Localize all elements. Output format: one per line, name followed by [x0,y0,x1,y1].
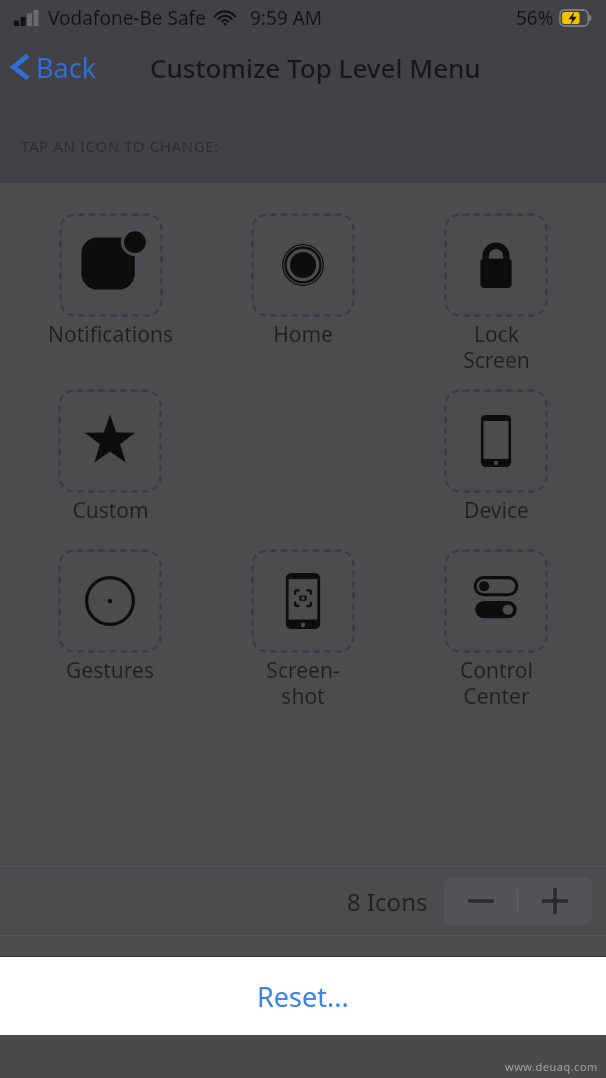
button[interactable]: Custom [58,387,162,527]
button[interactable]: Decrease icon count [444,877,517,925]
staticText: Customize Top Level Menu [150,50,481,85]
staticText: Reset... [257,978,349,1015]
staticText: Vodafone-Be Safe [48,5,206,31]
staticText: www.deuaq.com [505,1059,598,1074]
button[interactable]: Increase icon count [518,877,592,925]
other: Lock Screen [444,213,548,317]
staticText: Lock Screen [463,320,530,375]
other: Notifications [59,213,163,317]
staticText: Custom [72,496,149,525]
button[interactable]: Device [444,387,548,527]
other: Device [444,389,548,493]
staticText: Control Center [460,656,533,711]
staticText: TAP AN ICON TO CHANGE: [21,136,219,156]
button[interactable]: Reset... [0,957,606,1035]
button[interactable]: Control Center [444,547,548,713]
button[interactable]: Gestures [58,547,162,687]
staticText: Screen- shot [266,656,340,711]
staticText: Device [464,496,529,525]
button[interactable]: Notifications [48,211,173,351]
other: Home [251,213,355,317]
button[interactable]: Back [10,36,97,98]
button[interactable]: Home [251,211,355,351]
staticText: 56% [516,5,554,31]
staticText: Back [36,49,97,86]
button[interactable]: Screen- shot [251,547,355,713]
staticText: Gestures [66,656,154,685]
other: Custom [58,389,162,493]
other: Gestures [58,549,162,653]
staticText: Home [273,320,333,349]
other: Screen- shot [251,549,355,653]
staticText: 9:59 AM [250,5,323,31]
staticText: Notifications [48,320,173,349]
button[interactable]: Lock Screen [444,211,548,377]
other: Control Center [444,549,548,653]
staticText: 8 Icons [347,885,428,918]
